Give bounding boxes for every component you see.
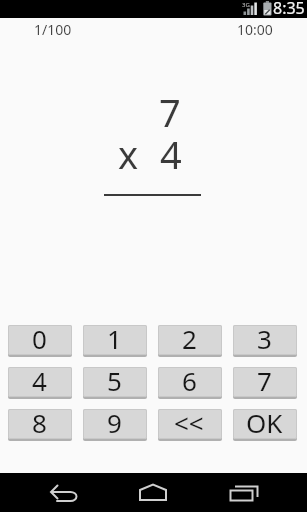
staticText: 4 xyxy=(160,128,182,180)
button[interactable]: 8 xyxy=(8,409,72,441)
button[interactable]: OK xyxy=(233,409,297,441)
staticText: 5 xyxy=(107,367,122,393)
staticText: 6 xyxy=(182,367,197,393)
staticText: x xyxy=(118,128,139,180)
staticText: 3G xyxy=(242,1,250,9)
button[interactable] xyxy=(0,473,103,512)
button[interactable] xyxy=(205,473,307,512)
staticText: 0 xyxy=(32,325,47,351)
button[interactable] xyxy=(103,473,205,512)
staticText: 8:35 xyxy=(273,0,305,15)
button[interactable]: << xyxy=(158,409,222,441)
button[interactable]: 5 xyxy=(83,367,147,399)
button[interactable]: 3 xyxy=(233,325,297,357)
staticText: 7 xyxy=(257,367,272,393)
staticText: 8 xyxy=(32,409,47,435)
staticText: 10:00 xyxy=(237,20,273,39)
staticText: 2 xyxy=(182,325,197,351)
button[interactable]: 9 xyxy=(83,409,147,441)
staticText: 7 xyxy=(159,86,181,138)
staticText: OK xyxy=(246,409,283,435)
staticText: 4 xyxy=(32,367,47,393)
staticText: 1/100 xyxy=(34,20,72,39)
button[interactable]: 6 xyxy=(158,367,222,399)
button[interactable]: 2 xyxy=(158,325,222,357)
button[interactable]: 7 xyxy=(233,367,297,399)
staticText: << xyxy=(174,409,204,435)
button[interactable]: 1 xyxy=(83,325,147,357)
staticText: 3 xyxy=(257,325,272,351)
staticText: 1 xyxy=(107,325,122,351)
staticText: 9 xyxy=(107,409,122,435)
button[interactable]: 0 xyxy=(8,325,72,357)
button[interactable]: 4 xyxy=(8,367,72,399)
